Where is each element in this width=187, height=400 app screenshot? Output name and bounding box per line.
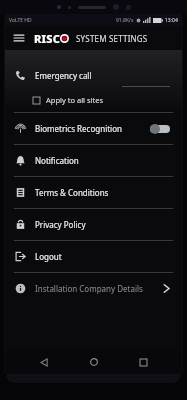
staticText: Terms & Conditions bbox=[35, 187, 109, 198]
button[interactable]: Privacy Policy bbox=[5, 209, 182, 240]
staticText: Installation Company Details bbox=[35, 283, 143, 294]
staticText: Apply to all sites bbox=[46, 95, 104, 105]
staticText: Privacy Policy bbox=[35, 219, 86, 230]
staticText: Notification bbox=[35, 155, 79, 166]
button[interactable]: Biometrics Recognition toggle bbox=[150, 124, 170, 134]
button[interactable]: Installation Company Details bbox=[5, 273, 182, 304]
button[interactable]: Emergency call bbox=[5, 64, 182, 86]
button[interactable]: Notification bbox=[5, 145, 182, 176]
staticText: 13:04 bbox=[165, 17, 178, 24]
staticText: RISC bbox=[34, 31, 60, 46]
button[interactable]: Terms & Conditions bbox=[5, 177, 182, 208]
button[interactable]: Home bbox=[84, 352, 104, 372]
staticText: Logout bbox=[35, 251, 62, 262]
staticText: SYSTEM SETTINGS bbox=[76, 33, 148, 44]
button[interactable]: Biometrics Recognition bbox=[5, 113, 182, 144]
button[interactable]: Menu bbox=[11, 30, 27, 46]
button[interactable]: Apply to all sites bbox=[5, 92, 182, 108]
staticText: Biometrics Recognition bbox=[35, 123, 122, 134]
staticText: VoLTE HD bbox=[9, 17, 32, 24]
staticText: Emergency call bbox=[35, 70, 92, 81]
staticText: 91.8K/s bbox=[116, 17, 134, 24]
button[interactable]: Recent apps bbox=[133, 352, 153, 372]
button[interactable]: Logout bbox=[5, 241, 182, 272]
button[interactable]: Back bbox=[34, 352, 54, 372]
